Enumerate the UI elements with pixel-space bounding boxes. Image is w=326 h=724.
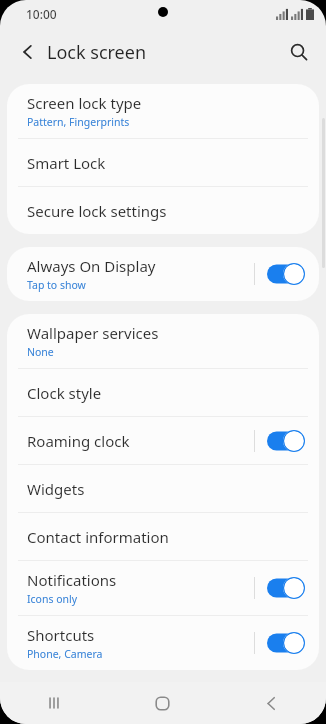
staticText: Lock screen	[47, 40, 147, 65]
button[interactable]: Secure lock settings	[7, 187, 319, 234]
button[interactable]: Always On Display	[7, 247, 319, 301]
button[interactable]: On	[267, 430, 305, 452]
button[interactable]: Widgets	[7, 465, 319, 512]
button[interactable]: Home	[108, 682, 217, 724]
staticText: Shortcuts	[27, 625, 95, 645]
button[interactable]: Clock style	[7, 369, 319, 416]
staticText: Icons only	[27, 592, 78, 606]
staticText: Widgets	[27, 479, 85, 499]
staticText: Contact information	[27, 527, 169, 547]
staticText: Clock style	[27, 383, 102, 403]
staticText: None	[27, 345, 54, 359]
button[interactable]: Search	[280, 33, 318, 71]
button[interactable]: On	[267, 577, 305, 599]
staticText: Always On Display	[27, 256, 156, 276]
button[interactable]: On	[267, 263, 305, 285]
staticText: 10:00	[26, 6, 57, 22]
staticText: Roaming clock	[27, 431, 130, 451]
staticText: Notifications	[27, 570, 117, 590]
staticText: Tap to show	[27, 278, 86, 292]
button[interactable]: On	[267, 632, 305, 654]
button[interactable]: Wallpaper services	[7, 314, 319, 368]
staticText: Screen lock type	[27, 93, 142, 113]
button[interactable]: Recents	[0, 682, 108, 724]
button[interactable]: Back	[10, 34, 46, 70]
staticText: Secure lock settings	[27, 201, 167, 221]
button[interactable]: Smart Lock	[7, 139, 319, 186]
staticText: Pattern, Fingerprints	[27, 115, 130, 129]
staticText: Wallpaper services	[27, 323, 159, 343]
button[interactable]: Shortcuts	[7, 616, 319, 670]
button[interactable]: Contact information	[7, 513, 319, 560]
button[interactable]: Back	[217, 682, 326, 724]
staticText: Phone, Camera	[27, 647, 103, 661]
button[interactable]: Screen lock type	[7, 84, 319, 138]
staticText: Smart Lock	[27, 153, 106, 173]
button[interactable]: Notifications	[7, 561, 319, 615]
button[interactable]: Roaming clock	[7, 417, 319, 464]
